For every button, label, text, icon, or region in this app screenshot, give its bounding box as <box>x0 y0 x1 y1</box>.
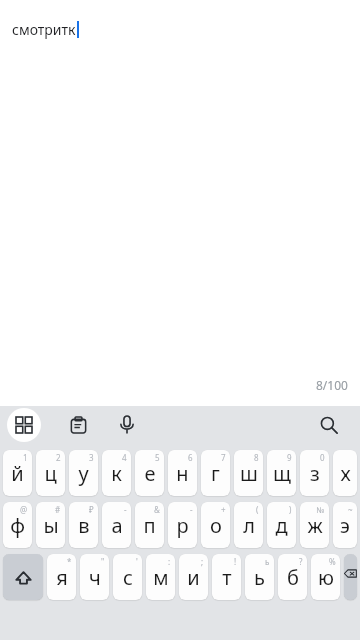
button[interactable]: я <box>47 554 76 600</box>
staticText: @ <box>20 504 28 515</box>
button[interactable]: е <box>135 450 164 496</box>
staticText: смотритк <box>12 20 76 39</box>
staticText: ю <box>318 564 334 591</box>
button[interactable]: й <box>3 450 32 496</box>
button[interactable]: ш <box>234 450 263 496</box>
staticText: э <box>340 512 350 539</box>
staticText: н <box>176 460 189 487</box>
button[interactable]: э <box>333 502 357 548</box>
staticText: ' <box>136 556 138 567</box>
button[interactable]: б <box>278 554 307 600</box>
staticText: ? <box>299 556 303 567</box>
staticText: ! <box>234 556 237 567</box>
staticText: - <box>124 504 127 515</box>
staticText: е <box>144 460 156 487</box>
button[interactable]: щ <box>267 450 296 496</box>
staticText: й <box>11 460 24 487</box>
staticText: д <box>275 512 288 539</box>
button[interactable]: с <box>113 554 142 600</box>
staticText: о <box>210 512 222 539</box>
button[interactable]: в <box>69 502 98 548</box>
button[interactable]: р <box>168 502 197 548</box>
staticText: ₽ <box>89 504 94 515</box>
staticText: ь <box>265 556 270 567</box>
staticText: ь <box>254 564 265 591</box>
button[interactable]: к <box>102 450 131 496</box>
button[interactable]: м <box>146 554 175 600</box>
staticText: т <box>222 564 232 591</box>
button[interactable]: Clipboard <box>61 408 95 442</box>
staticText: 4 <box>122 452 127 463</box>
staticText: а <box>111 512 123 539</box>
button[interactable]: о <box>201 502 230 548</box>
staticText: 6 <box>188 452 193 463</box>
button[interactable]: п <box>135 502 164 548</box>
button[interactable] <box>3 554 43 600</box>
button[interactable]: ы <box>36 502 65 548</box>
staticText: з <box>310 460 320 487</box>
staticText: % <box>329 556 336 567</box>
staticText: 9 <box>287 452 292 463</box>
staticText: я <box>56 564 68 591</box>
staticText: - <box>190 504 193 515</box>
button[interactable]: ц <box>36 450 65 496</box>
staticText: 8/100 <box>316 377 348 393</box>
staticText: 8 <box>254 452 259 463</box>
staticText: с <box>123 564 133 591</box>
staticText: ц <box>44 460 57 487</box>
staticText: № <box>316 504 325 515</box>
button[interactable]: ь <box>245 554 274 600</box>
staticText: б <box>287 564 299 591</box>
staticText: п <box>143 512 156 539</box>
staticText: ч <box>89 564 101 591</box>
button[interactable]: у <box>69 450 98 496</box>
staticText: ж <box>307 512 323 539</box>
staticText: ф <box>10 512 25 539</box>
staticText: 0 <box>320 452 325 463</box>
staticText: 2 <box>56 452 61 463</box>
staticText: & <box>154 504 160 515</box>
button[interactable]: а <box>102 502 131 548</box>
button[interactable]: и <box>179 554 208 600</box>
staticText: 7 <box>221 452 226 463</box>
button[interactable]: з <box>300 450 329 496</box>
button[interactable]: н <box>168 450 197 496</box>
staticText: # <box>55 504 61 515</box>
staticText: 1 <box>23 452 28 463</box>
staticText: щ <box>273 460 291 487</box>
staticText: ( <box>256 504 259 515</box>
button[interactable]: ф <box>3 502 32 548</box>
staticText: 5 <box>155 452 160 463</box>
staticText: к <box>111 460 122 487</box>
button[interactable]: ж <box>300 502 329 548</box>
button[interactable]: х <box>333 450 357 496</box>
staticText: х <box>340 460 351 487</box>
staticText: ) <box>289 504 292 515</box>
staticText: и <box>187 564 200 591</box>
staticText: р <box>176 512 189 539</box>
button[interactable]: г <box>201 450 230 496</box>
button[interactable]: Toolbar <box>7 408 41 442</box>
button[interactable] <box>344 554 357 600</box>
staticText: л <box>243 512 255 539</box>
staticText: ш <box>240 460 258 487</box>
button[interactable]: ч <box>80 554 109 600</box>
staticText: у <box>78 460 89 487</box>
staticText: ы <box>43 512 59 539</box>
button[interactable]: т <box>212 554 241 600</box>
staticText: + <box>221 504 226 515</box>
staticText: ; <box>201 556 204 567</box>
button[interactable]: д <box>267 502 296 548</box>
staticText: 3 <box>89 452 94 463</box>
staticText: г <box>211 460 220 487</box>
button[interactable]: л <box>234 502 263 548</box>
staticText: * <box>67 556 72 567</box>
staticText: ~ <box>348 504 353 515</box>
button[interactable]: ю <box>311 554 340 600</box>
staticText: " <box>101 556 105 567</box>
staticText: м <box>153 564 169 591</box>
button[interactable]: Voice input <box>110 408 144 442</box>
staticText: в <box>78 512 90 539</box>
staticText: : <box>168 556 171 567</box>
button[interactable]: Search <box>310 406 348 444</box>
